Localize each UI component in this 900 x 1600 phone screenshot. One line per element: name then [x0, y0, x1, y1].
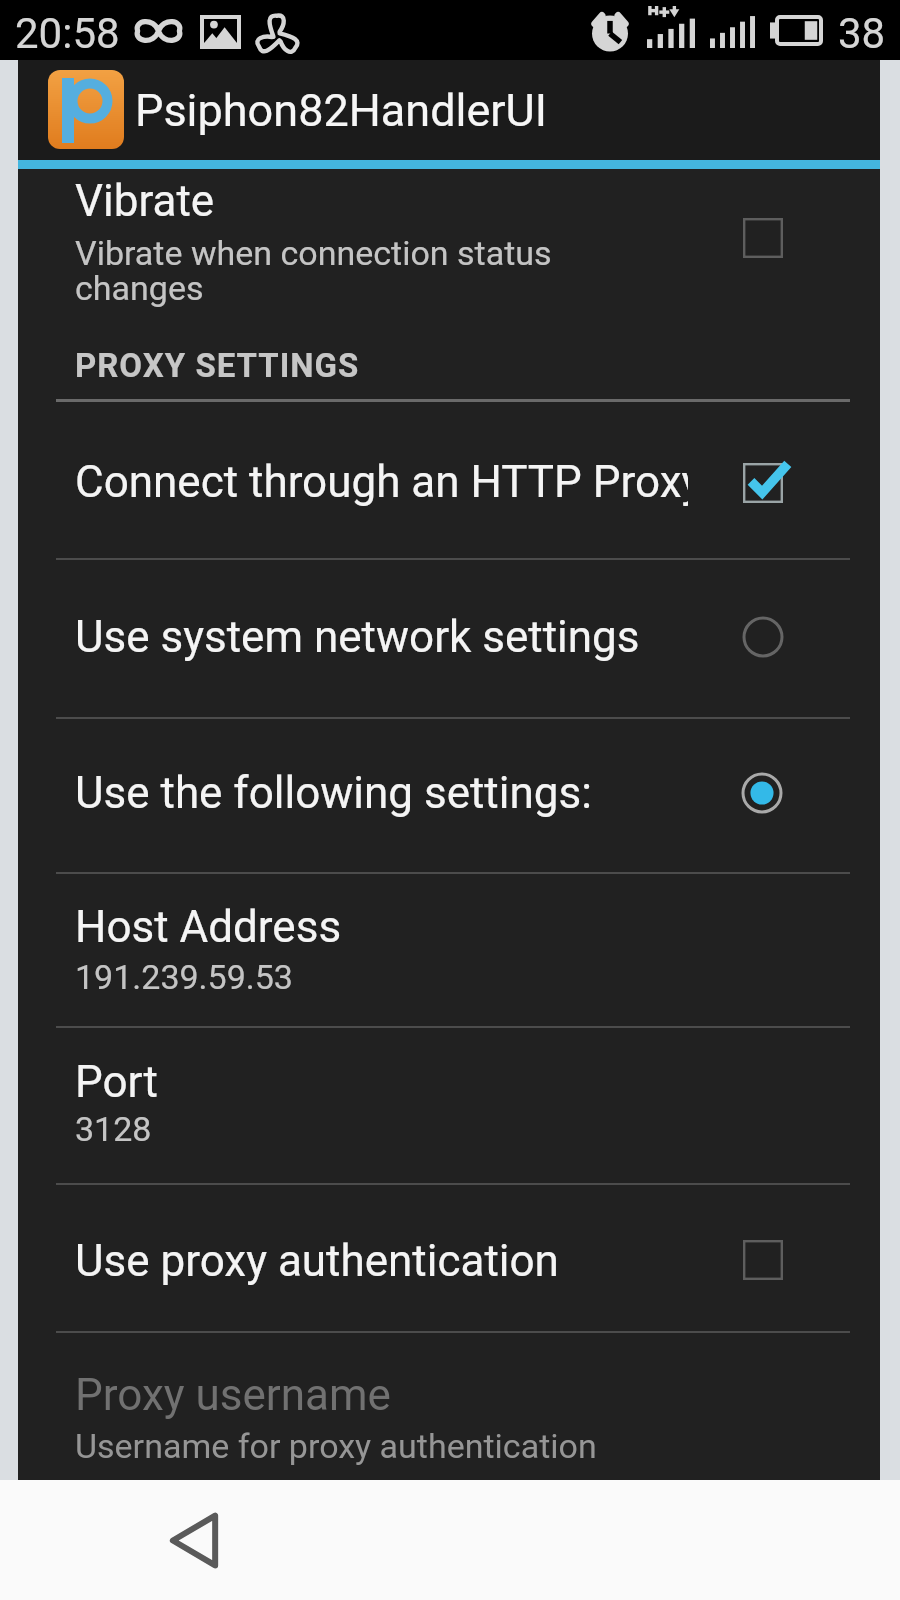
staticText: 3128 [75, 1109, 152, 1149]
staticText: Use the following settings: [75, 767, 592, 819]
staticText: Vibrate [75, 175, 215, 227]
staticText: 191.239.59.53 [75, 957, 293, 997]
staticText: Connect through an HTTP Proxy [75, 456, 688, 508]
button[interactable]: Back [152, 1498, 236, 1582]
button[interactable]: Use the following settings: [18, 719, 880, 872]
button[interactable]: Checkbox [729, 204, 797, 272]
button[interactable]: Port [18, 1028, 880, 1183]
button[interactable]: Use proxy authentication [18, 1185, 880, 1331]
staticText: Proxy username [75, 1369, 391, 1421]
staticText: Psiphon82HandlerUI [135, 84, 547, 137]
button[interactable]: Checkbox [729, 1226, 797, 1294]
button[interactable]: Selected radio button [728, 759, 796, 827]
button[interactable]: Radio button [729, 603, 797, 671]
button[interactable]: Connect through an HTTP Proxy [18, 401, 880, 558]
button[interactable]: Psiphon app icon, navigate up [18, 60, 880, 160]
staticText: 20:58 [15, 9, 120, 58]
staticText: Use system network settings [75, 611, 640, 663]
staticText: Vibrate when connection status [75, 233, 552, 273]
staticText: Port [75, 1056, 158, 1108]
other: Psiphon app icon, navigate up [48, 70, 124, 149]
staticText: Host Address [75, 901, 342, 953]
staticText: changes [75, 268, 204, 308]
button[interactable]: Host Address [18, 874, 880, 1026]
staticText: Username for proxy authentication [75, 1426, 597, 1466]
staticText: PROXY SETTINGS [75, 346, 360, 385]
button[interactable]: Vibrate [18, 169, 880, 332]
staticText: Use proxy authentication [75, 1235, 559, 1287]
button[interactable]: Proxy username [18, 1333, 880, 1480]
staticText: 38 [838, 9, 886, 58]
button[interactable]: Use system network settings [18, 560, 880, 717]
button[interactable]: Checked checkbox [729, 449, 797, 517]
